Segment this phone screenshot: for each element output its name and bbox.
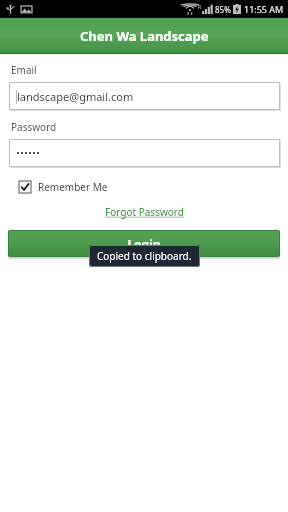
staticText: landscape@gmail.com <box>17 89 134 104</box>
staticText: Remember Me <box>38 180 108 194</box>
staticText: Login <box>127 236 161 252</box>
staticText: Copied to clipboard. <box>97 249 192 263</box>
staticText: R <box>198 4 202 11</box>
staticText: Password <box>11 120 57 134</box>
button[interactable] <box>9 139 280 167</box>
staticText: Email <box>11 63 37 77</box>
staticText: Chen Wa Landscape <box>80 27 209 45</box>
button[interactable]: Forgot Password <box>99 203 190 221</box>
staticText: 85% <box>215 4 231 15</box>
button[interactable]: Remember Me <box>17 178 110 196</box>
staticText: 11:55 AM <box>244 3 284 15</box>
button[interactable]: Login <box>8 230 280 257</box>
button[interactable]: landscape@gmail.com <box>9 82 280 110</box>
staticText: Forgot Password <box>105 205 184 219</box>
